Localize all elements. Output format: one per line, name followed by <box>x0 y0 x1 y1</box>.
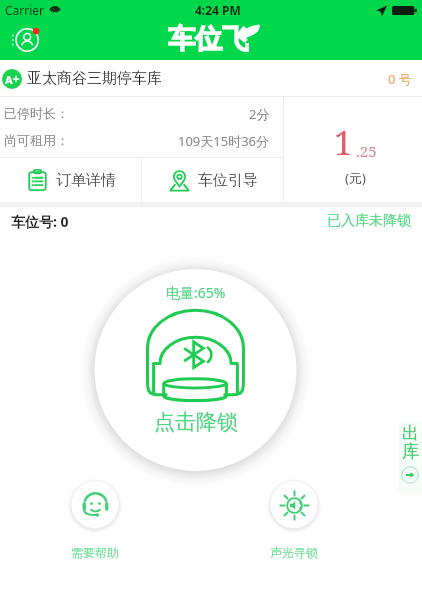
staticText: 4:24 PM <box>195 2 241 18</box>
staticText: 声光寻锁 <box>270 545 318 560</box>
button[interactable]: 订单详情 <box>0 158 141 202</box>
button[interactable]: 点击降锁 <box>80 255 311 486</box>
staticText: 库 <box>402 441 419 462</box>
staticText: 1 <box>334 120 353 165</box>
button[interactable]: 车位引导 <box>142 158 283 202</box>
button[interactable]: Profile <box>7 22 43 58</box>
staticText: 109天15时36分 <box>178 132 270 150</box>
staticText: 尚可租用： <box>4 132 69 148</box>
staticText: 亚太商谷三期停车库 <box>27 69 162 88</box>
staticText: 0 号 <box>388 70 412 88</box>
staticText: Carrier <box>5 2 45 18</box>
staticText: 车位引导 <box>198 171 258 190</box>
staticText: 电量:65% <box>166 283 226 302</box>
button[interactable]: 声光寻锁 <box>266 477 322 533</box>
button[interactable]: 需要帮助 <box>67 477 123 533</box>
staticText: 点击降锁 <box>154 409 238 435</box>
button[interactable]: 出库 <box>398 422 422 494</box>
staticText: 已入库未降锁 <box>327 212 411 230</box>
staticText: 出 <box>402 423 419 444</box>
staticText: .25 <box>356 141 377 161</box>
staticText: 需要帮助 <box>71 545 119 560</box>
staticText: (元) <box>345 169 366 187</box>
staticText: 2分 <box>249 105 270 123</box>
staticText: 车位号: 0 <box>11 212 69 231</box>
staticText: A <box>5 72 13 87</box>
staticText: 订单详情 <box>56 171 116 190</box>
staticText: 已停时长： <box>4 105 69 121</box>
staticText: 车位飞 <box>168 22 249 52</box>
